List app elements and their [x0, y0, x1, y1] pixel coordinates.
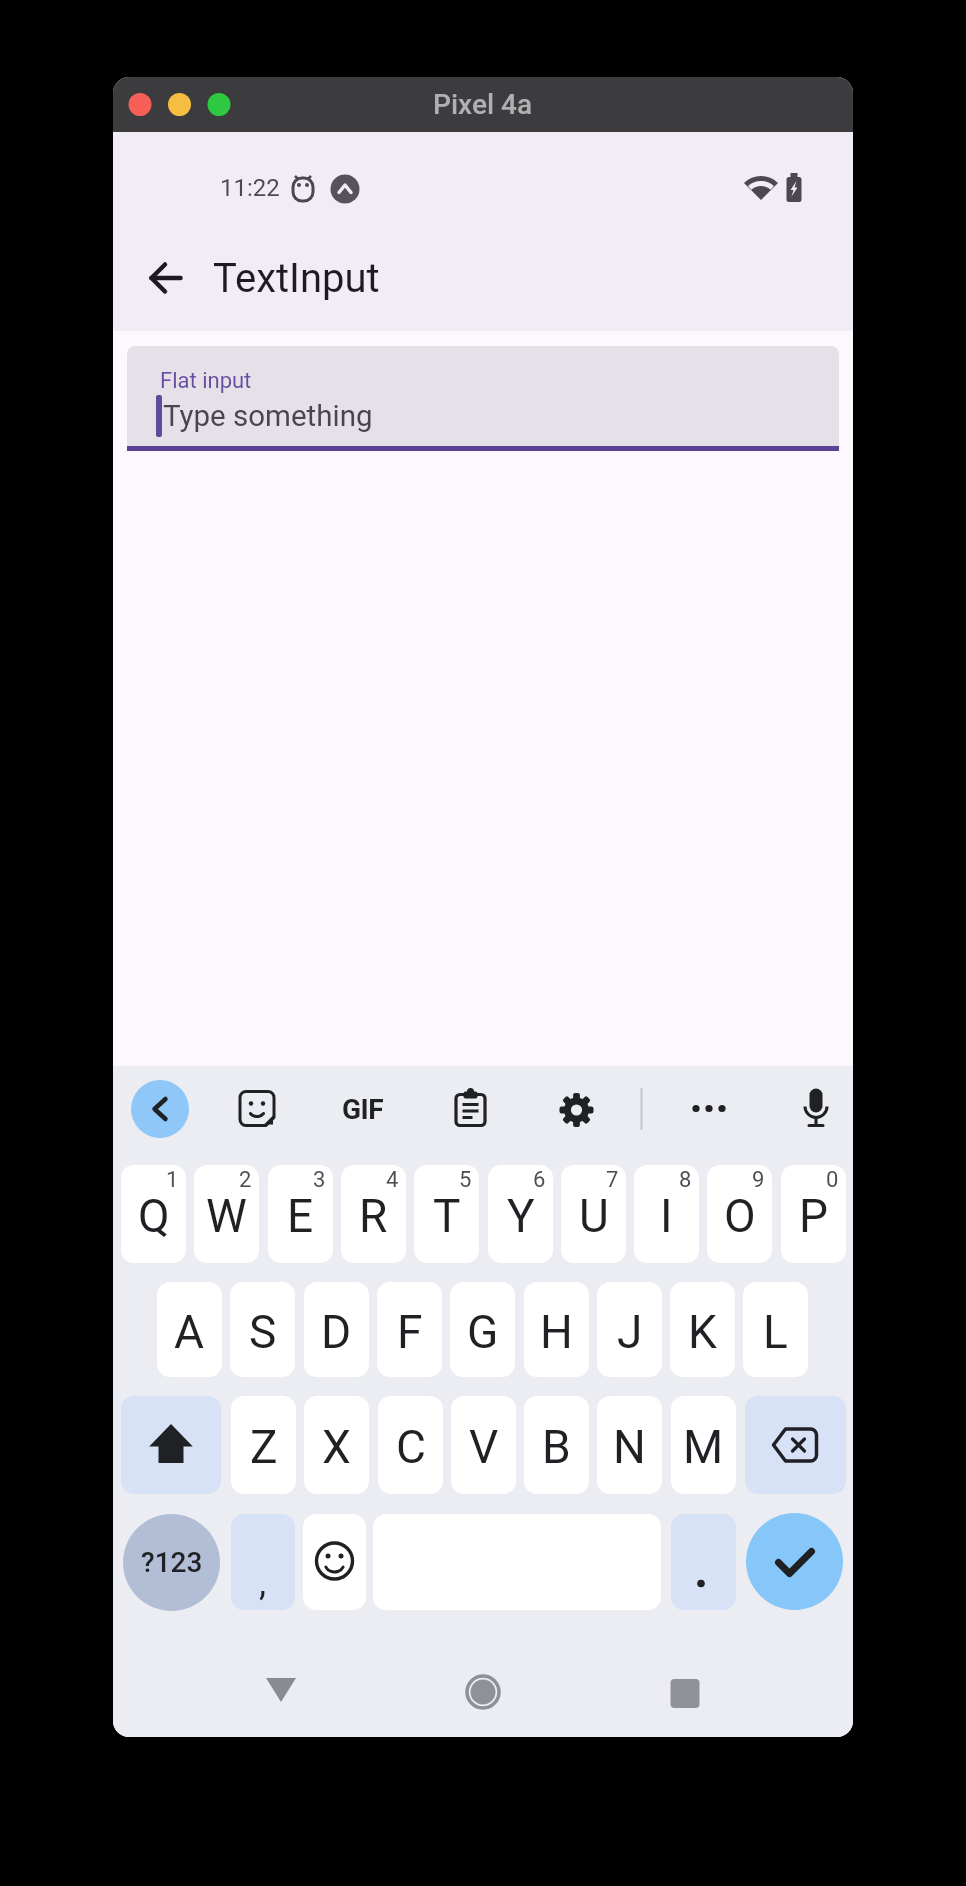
- staticText: 8: [679, 1167, 692, 1193]
- staticText: TextInput: [213, 255, 380, 302]
- button[interactable]: [645, 1662, 725, 1722]
- button[interactable]: B: [524, 1396, 589, 1494]
- button[interactable]: [136, 248, 196, 308]
- button[interactable]: [303, 1514, 366, 1610]
- staticText: 9: [752, 1167, 765, 1193]
- staticText: Q: [138, 1189, 170, 1243]
- staticText: Pixel 4a: [433, 88, 533, 121]
- button[interactable]: [121, 1396, 221, 1494]
- button[interactable]: ,: [231, 1514, 295, 1610]
- staticText: H: [540, 1305, 573, 1359]
- staticText: M: [683, 1420, 724, 1474]
- button[interactable]: L: [743, 1282, 808, 1377]
- button[interactable]: A: [157, 1282, 222, 1377]
- staticText: A: [174, 1305, 205, 1359]
- button[interactable]: J: [597, 1282, 662, 1377]
- staticText: J: [617, 1305, 643, 1359]
- staticText: G: [467, 1305, 499, 1359]
- staticText: ?123: [141, 1546, 203, 1579]
- button[interactable]: S: [230, 1282, 295, 1377]
- button[interactable]: [671, 1514, 736, 1610]
- button[interactable]: ?123: [123, 1514, 220, 1611]
- staticText: ,: [259, 1562, 267, 1604]
- button[interactable]: Y: [488, 1165, 553, 1263]
- button[interactable]: [746, 1513, 843, 1610]
- button[interactable]: W: [194, 1165, 259, 1263]
- button[interactable]: Q: [121, 1165, 186, 1263]
- button[interactable]: I: [634, 1165, 699, 1263]
- button[interactable]: U: [561, 1165, 626, 1263]
- staticText: P: [799, 1189, 829, 1243]
- button[interactable]: [241, 1660, 321, 1720]
- staticText: I: [660, 1189, 673, 1243]
- staticText: L: [763, 1305, 788, 1359]
- staticText: Y: [507, 1189, 535, 1243]
- button[interactable]: Flat input: [127, 346, 839, 451]
- button[interactable]: [443, 1662, 523, 1722]
- staticText: X: [322, 1420, 351, 1474]
- button[interactable]: F: [377, 1282, 442, 1377]
- staticText: T: [433, 1189, 461, 1243]
- button[interactable]: D: [304, 1282, 369, 1377]
- staticText: O: [724, 1189, 756, 1243]
- staticText: U: [579, 1189, 609, 1243]
- staticText: S: [249, 1305, 277, 1359]
- button[interactable]: M: [671, 1396, 736, 1494]
- staticText: Type something: [163, 399, 373, 434]
- button[interactable]: O: [707, 1165, 772, 1263]
- staticText: 1: [166, 1167, 179, 1193]
- button[interactable]: R: [341, 1165, 406, 1263]
- button[interactable]: N: [597, 1396, 662, 1494]
- staticText: 2: [239, 1167, 252, 1193]
- staticText: V: [469, 1420, 499, 1474]
- staticText: GIF: [342, 1093, 384, 1126]
- staticText: 6: [533, 1167, 546, 1193]
- button[interactable]: V: [451, 1396, 516, 1494]
- button[interactable]: G: [450, 1282, 515, 1377]
- staticText: D: [321, 1305, 352, 1359]
- button[interactable]: [745, 1396, 846, 1494]
- staticText: Z: [250, 1420, 278, 1474]
- staticText: Flat input: [160, 368, 252, 394]
- staticText: F: [397, 1305, 423, 1359]
- staticText: B: [542, 1420, 571, 1474]
- staticText: E: [287, 1189, 314, 1243]
- staticText: N: [613, 1420, 646, 1474]
- button[interactable]: P: [781, 1165, 846, 1263]
- button[interactable]: K: [670, 1282, 735, 1377]
- staticText: 4: [386, 1167, 399, 1193]
- button[interactable]: C: [378, 1396, 443, 1494]
- staticText: 0: [826, 1167, 839, 1193]
- button[interactable]: [131, 1080, 189, 1138]
- button[interactable]: E: [268, 1165, 333, 1263]
- staticText: 7: [606, 1167, 619, 1193]
- staticText: 11:22: [220, 174, 280, 202]
- staticText: 3: [313, 1167, 326, 1193]
- button[interactable]: H: [524, 1282, 589, 1377]
- staticText: C: [396, 1420, 426, 1474]
- button[interactable]: T: [414, 1165, 479, 1263]
- staticText: K: [688, 1305, 717, 1359]
- button[interactable]: X: [304, 1396, 369, 1494]
- staticText: 5: [459, 1167, 472, 1193]
- button[interactable]: Z: [231, 1396, 296, 1494]
- staticText: R: [359, 1189, 388, 1243]
- staticText: W: [206, 1189, 247, 1243]
